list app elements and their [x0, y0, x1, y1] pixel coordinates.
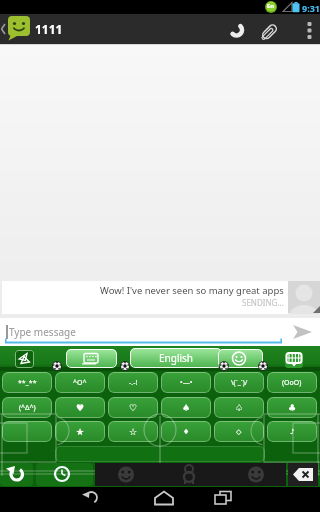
- button[interactable]: ♥: [55, 397, 105, 418]
- button[interactable]: [222, 14, 251, 44]
- button[interactable]: ♤: [214, 397, 264, 418]
- staticText: ♥: [76, 403, 85, 413]
- staticText: ◇: [236, 428, 242, 436]
- staticText: ★: [76, 427, 85, 437]
- button[interactable]: [6, 15, 33, 43]
- staticText: (^Δ^): [19, 403, 36, 413]
- staticText: English: [159, 351, 194, 365]
- button[interactable]: ♡: [108, 397, 158, 418]
- staticText: Type message: [9, 325, 76, 339]
- button[interactable]: \(´_`)/: [214, 372, 264, 393]
- staticText: SENDING...: [242, 297, 284, 308]
- button[interactable]: [288, 463, 318, 486]
- button[interactable]: (^Δ^): [2, 397, 52, 418]
- button[interactable]: [144, 487, 184, 512]
- staticText: En: [267, 2, 275, 10]
- staticText: •—•: [180, 378, 193, 388]
- button[interactable]: [217, 463, 286, 486]
- staticText: 9:31: [302, 2, 320, 14]
- staticText: Wow! I've never seen so many great apps: [100, 284, 284, 297]
- staticText: ♦: [183, 428, 190, 436]
- button[interactable]: ♣: [267, 397, 317, 418]
- button[interactable]: ★: [55, 421, 105, 442]
- button[interactable]: ☆: [108, 421, 158, 442]
- button[interactable]: ♠: [161, 397, 211, 418]
- button[interactable]: [55, 446, 265, 462]
- staticText: ♠: [182, 403, 191, 413]
- button[interactable]: [297, 14, 320, 44]
- button[interactable]: [286, 318, 320, 346]
- button[interactable]: [0, 318, 286, 346]
- button[interactable]: [95, 463, 160, 486]
- button[interactable]: ^O^: [55, 372, 105, 393]
- button[interactable]: -.-!: [108, 372, 158, 393]
- staticText: ☆: [129, 427, 138, 437]
- staticText: ♪: [290, 428, 295, 436]
- button[interactable]: **_**: [2, 372, 52, 393]
- button[interactable]: ◇: [214, 421, 264, 442]
- button[interactable]: [15, 350, 34, 368]
- staticText: -.-!: [129, 378, 138, 388]
- button[interactable]: [71, 487, 111, 512]
- button[interactable]: [202, 487, 242, 512]
- staticText: **_**: [18, 378, 37, 388]
- staticText: ♡: [129, 403, 138, 413]
- button[interactable]: [255, 14, 284, 44]
- button[interactable]: Wow! I've never seen so many great apps: [2, 281, 288, 314]
- button[interactable]: [288, 281, 320, 313]
- button[interactable]: [66, 349, 117, 368]
- button[interactable]: [36, 463, 93, 486]
- button[interactable]: •—•: [161, 372, 211, 393]
- button[interactable]: [285, 352, 303, 368]
- staticText: (OoO): [282, 378, 302, 388]
- button[interactable]: [160, 463, 217, 486]
- staticText: ♤: [235, 403, 244, 413]
- staticText: ♣: [288, 403, 297, 413]
- button[interactable]: [2, 421, 52, 442]
- staticText: ^O^: [73, 378, 87, 388]
- button[interactable]: [0, 463, 33, 486]
- staticText: \(´_`)/: [231, 378, 248, 388]
- button[interactable]: ♦: [161, 421, 211, 442]
- staticText: 1111: [35, 21, 63, 37]
- button[interactable]: English: [130, 348, 222, 368]
- button[interactable]: ♪: [267, 421, 317, 442]
- button[interactable]: [218, 349, 263, 368]
- button[interactable]: (OoO): [267, 372, 317, 393]
